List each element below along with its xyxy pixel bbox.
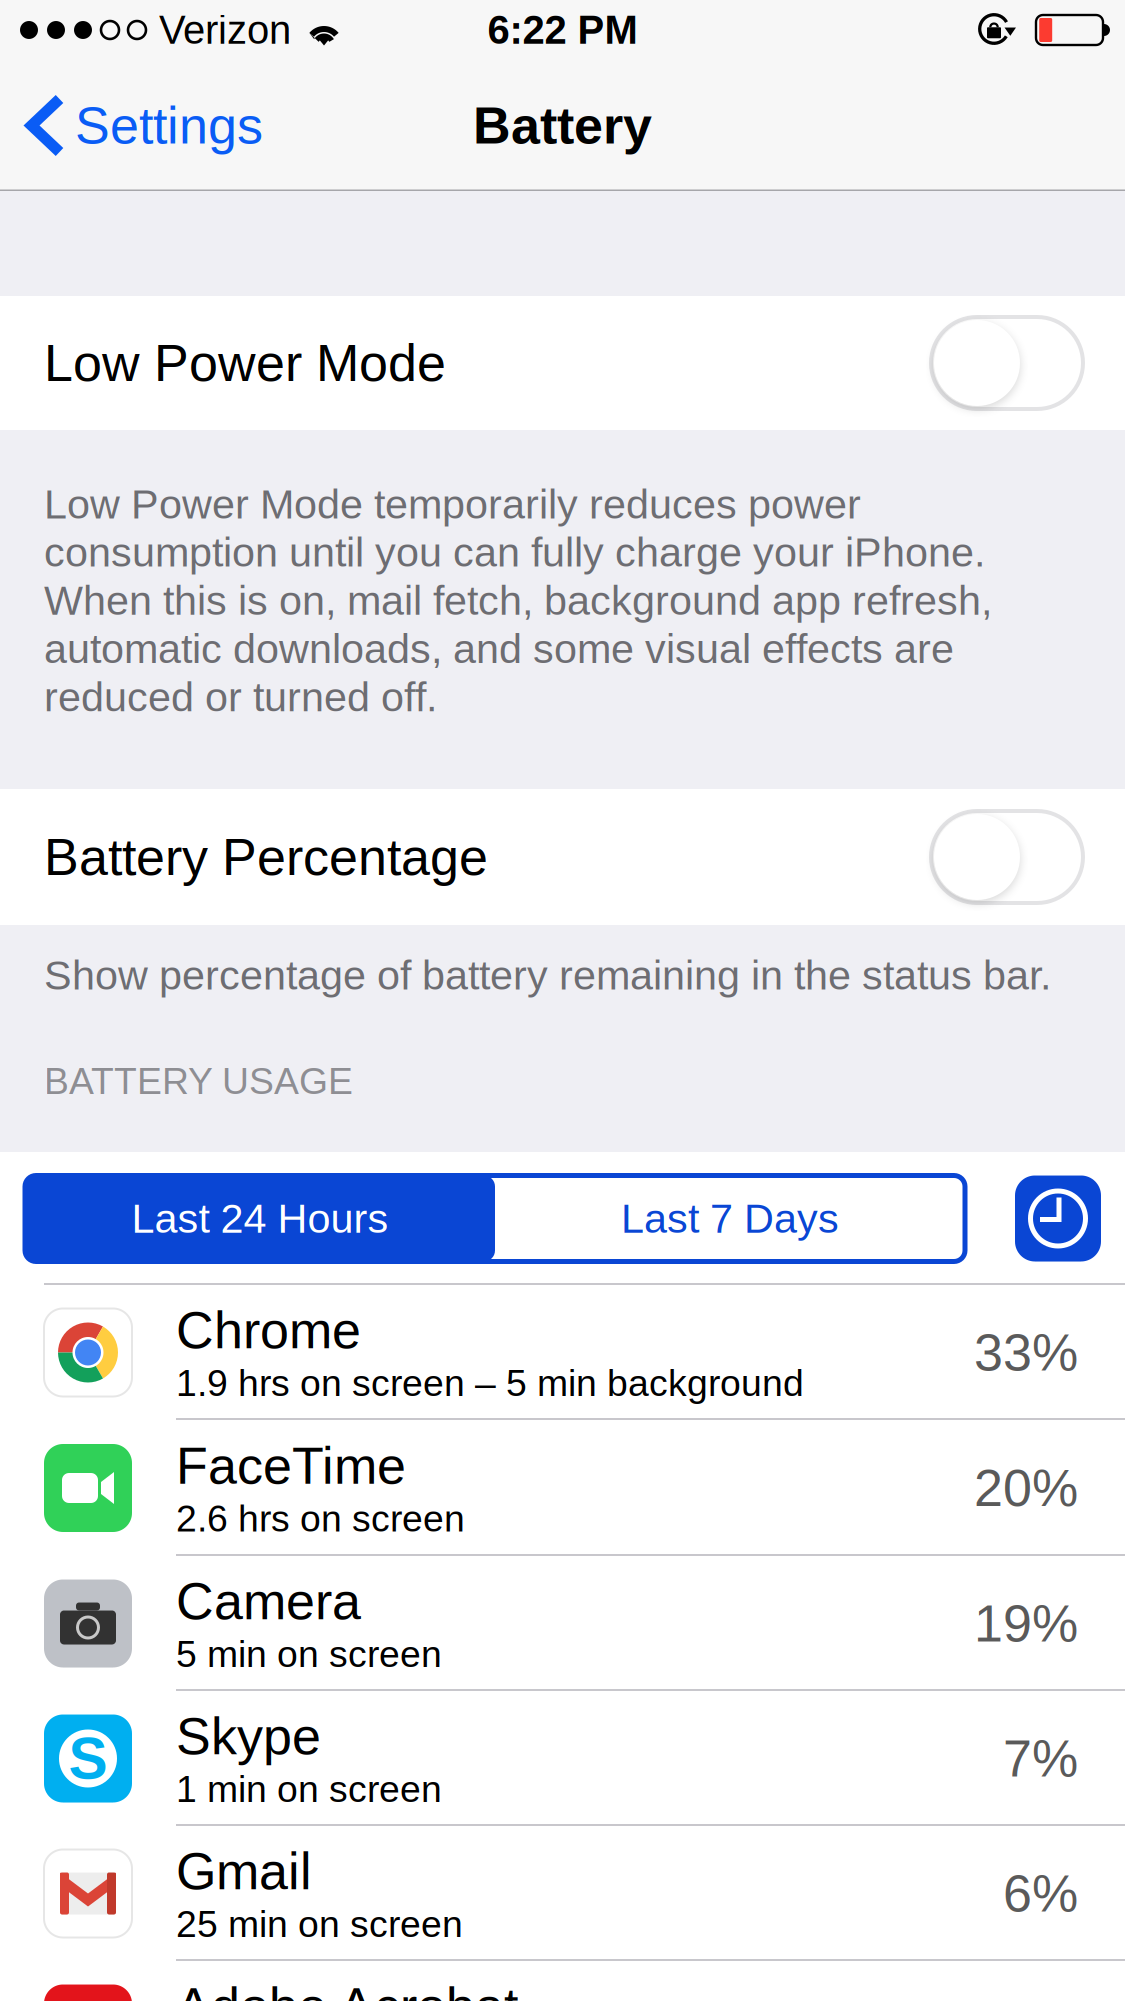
button[interactable]: Last 7 Days <box>495 1175 965 1261</box>
staticText: FaceTime <box>176 1437 406 1495</box>
staticText: 20% <box>974 1459 1078 1517</box>
staticText: Skype <box>176 1707 321 1765</box>
button[interactable]: FaceTime <box>0 1420 1125 1556</box>
button[interactable]: Camera <box>0 1556 1125 1691</box>
button[interactable]: Settings <box>0 60 285 191</box>
button[interactable]: Battery Percentage <box>0 789 1125 925</box>
staticText: S <box>68 1726 107 1791</box>
staticText: Chrome <box>176 1301 361 1359</box>
button[interactable]: Chrome <box>0 1285 1125 1420</box>
staticText: 5 min on screen <box>176 1633 442 1675</box>
staticText: Low Power Mode temporarily reduces power… <box>44 481 992 720</box>
staticText: Gmail <box>176 1842 312 1900</box>
staticText: 6:22 PM <box>487 8 637 52</box>
button[interactable]: Gmail <box>0 1826 1125 1961</box>
staticText: 33% <box>974 1323 1078 1382</box>
staticText: Adobe Acrobat <box>176 1977 518 2001</box>
staticText: 1 min on screen <box>176 1768 442 1810</box>
staticText: BATTERY USAGE <box>44 1060 353 1102</box>
staticText: 25 min on screen <box>176 1903 463 1945</box>
button[interactable]: Battery usage by time <box>1015 1175 1101 1261</box>
staticText: Verizon <box>159 8 291 52</box>
staticText: Settings <box>75 96 263 155</box>
staticText: Last 7 Days <box>621 1195 839 1242</box>
staticText: 1.9 hrs on screen – 5 min background <box>176 1362 804 1404</box>
button[interactable]: Low Power Mode <box>0 296 1125 430</box>
staticText: 6% <box>1003 1864 1078 1923</box>
staticText: Camera <box>176 1572 361 1630</box>
staticText: Show percentage of battery remaining in … <box>44 952 1051 998</box>
staticText: 19% <box>974 1594 1078 1653</box>
staticText: Battery <box>473 96 652 155</box>
button[interactable]: A <box>0 1961 1125 2001</box>
button[interactable]: Last 24 Hours <box>25 1175 495 1261</box>
staticText: Last 24 Hours <box>131 1195 388 1242</box>
staticText: 2.6 hrs on screen <box>176 1498 465 1539</box>
staticText: Low Power Mode <box>44 334 446 392</box>
button[interactable]: S <box>0 1691 1125 1826</box>
staticText: 7% <box>1003 1729 1078 1788</box>
staticText: Battery Percentage <box>44 828 488 886</box>
